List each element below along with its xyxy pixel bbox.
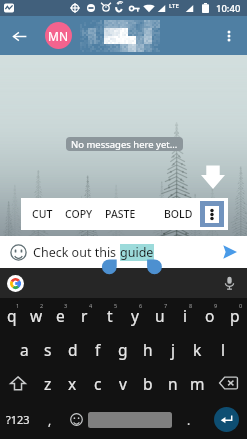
staticText: 10:40 xyxy=(216,2,241,15)
staticText: 4 xyxy=(89,302,93,309)
button[interactable]: e xyxy=(48,298,72,332)
staticText: No messages here yet… xyxy=(71,138,178,151)
button[interactable]: p xyxy=(222,298,247,332)
staticText: 9 xyxy=(214,302,218,309)
staticText: y xyxy=(131,305,139,326)
staticText: r xyxy=(81,305,88,326)
staticText: u xyxy=(155,305,165,326)
staticText: g xyxy=(118,339,128,360)
staticText: d xyxy=(68,339,78,360)
staticText: n xyxy=(168,373,178,394)
button[interactable]: c xyxy=(85,366,110,400)
button[interactable]: b xyxy=(135,366,160,400)
button[interactable]: Emoji keyboard xyxy=(64,400,88,439)
button[interactable]: g xyxy=(110,332,135,366)
button[interactable]: o xyxy=(197,298,222,332)
button[interactable]: x xyxy=(60,366,85,400)
button[interactable]: PASTE xyxy=(100,198,141,230)
staticText: , xyxy=(48,412,52,428)
staticText: guide xyxy=(120,244,154,261)
staticText: l xyxy=(221,339,225,360)
staticText: COPY xyxy=(65,207,93,221)
button[interactable]: MN xyxy=(45,22,72,49)
staticText: m xyxy=(190,373,205,394)
button[interactable]: . xyxy=(172,400,205,439)
staticText: 1 xyxy=(16,302,20,309)
staticText: p xyxy=(230,305,240,326)
button[interactable]: j xyxy=(160,332,185,366)
staticText: 8 xyxy=(189,302,193,309)
staticText: ?123 xyxy=(6,412,30,427)
button[interactable]: Voice input xyxy=(220,274,238,292)
button[interactable]: Space xyxy=(88,400,172,439)
staticText: 3 xyxy=(64,302,68,309)
button[interactable]: Shift xyxy=(0,366,36,400)
button[interactable]: w xyxy=(24,298,48,332)
button[interactable]: BOLD xyxy=(159,198,198,230)
staticText: . xyxy=(187,412,191,428)
button[interactable]: , xyxy=(36,400,64,439)
staticText: a xyxy=(20,339,29,360)
staticText: x xyxy=(68,373,77,394)
staticText: b xyxy=(143,373,153,394)
staticText: 2 xyxy=(40,302,44,309)
button[interactable]: Enter xyxy=(205,400,247,439)
button[interactable]: COPY xyxy=(60,198,98,230)
staticText: q xyxy=(7,305,17,326)
button[interactable]: k xyxy=(185,332,210,366)
button[interactable]: a xyxy=(12,332,36,366)
staticText: w xyxy=(30,305,43,326)
button[interactable]: n xyxy=(160,366,185,400)
staticText: 6 xyxy=(139,302,143,309)
staticText: k xyxy=(193,339,202,360)
staticText: 0 xyxy=(239,302,243,309)
staticText: Check out this xyxy=(33,244,120,261)
button[interactable]: More options xyxy=(213,20,245,52)
button[interactable]: q xyxy=(0,298,24,332)
staticText: CUT xyxy=(32,207,53,221)
button[interactable]: h xyxy=(135,332,160,366)
button[interactable]: z xyxy=(36,366,60,400)
button[interactable]: s xyxy=(36,332,60,366)
button[interactable]: Google search xyxy=(7,275,24,292)
staticText: c xyxy=(94,373,102,394)
button[interactable]: v xyxy=(110,366,135,400)
staticText: t xyxy=(107,305,113,326)
staticText: MN xyxy=(48,28,69,44)
staticText: v xyxy=(119,373,127,394)
staticText: s xyxy=(44,339,52,360)
button[interactable]: CUT xyxy=(27,198,58,230)
button[interactable]: d xyxy=(60,332,85,366)
button[interactable]: f xyxy=(85,332,110,366)
staticText: z xyxy=(44,373,52,394)
staticText: i xyxy=(183,305,187,326)
staticText: PASTE xyxy=(105,207,136,221)
button[interactable]: l xyxy=(210,332,235,366)
staticText: LTE xyxy=(169,2,179,10)
button[interactable]: ?123 xyxy=(0,400,36,439)
button[interactable]: i xyxy=(172,298,197,332)
button[interactable]: Backspace xyxy=(210,366,247,400)
button[interactable]: u xyxy=(147,298,172,332)
button[interactable]: t xyxy=(97,298,122,332)
staticText: BOLD xyxy=(164,207,193,221)
button[interactable]: Emoji xyxy=(6,240,30,264)
staticText: o xyxy=(205,305,215,326)
button[interactable]: y xyxy=(122,298,147,332)
button[interactable]: r xyxy=(72,298,97,332)
button[interactable]: Send xyxy=(218,240,242,264)
staticText: f xyxy=(95,339,101,360)
staticText: h xyxy=(143,339,153,360)
staticText: 5 xyxy=(114,302,118,309)
staticText: j xyxy=(171,339,175,360)
staticText: e xyxy=(56,305,65,326)
button[interactable]: More options xyxy=(200,201,224,227)
button[interactable]: m xyxy=(185,366,210,400)
staticText: 7 xyxy=(164,302,168,309)
button[interactable]: Back xyxy=(3,20,35,52)
